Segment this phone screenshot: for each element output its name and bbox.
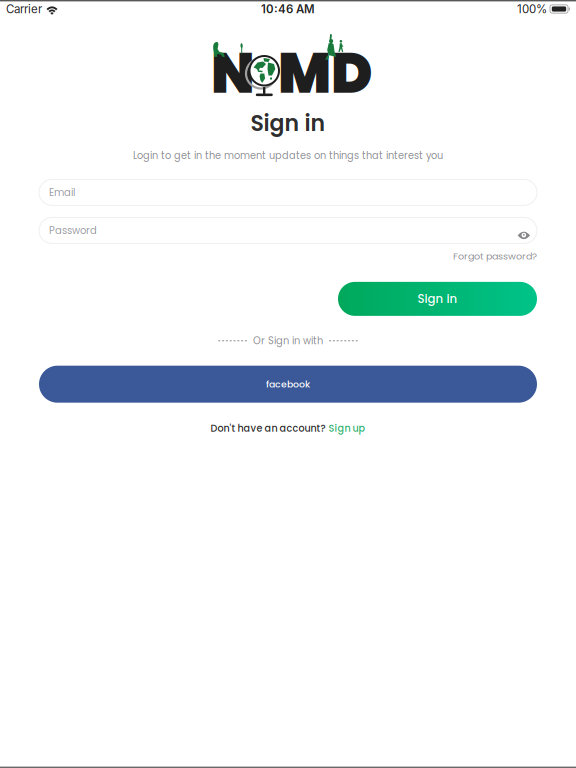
staticText: 100% xyxy=(517,2,547,16)
staticText: Login to get in the moment updates on th… xyxy=(133,149,443,162)
staticText: Or Sign in with xyxy=(253,334,323,348)
staticText: Don't have an account? xyxy=(210,422,325,435)
button[interactable]: facebook xyxy=(39,366,537,403)
button[interactable]: Forgot password? xyxy=(445,246,537,266)
staticText: N xyxy=(211,34,255,112)
staticText: 10:46 AM xyxy=(261,2,315,16)
button[interactable]: Sign up xyxy=(328,422,365,435)
staticText: Email xyxy=(49,185,75,199)
staticText: MD xyxy=(278,34,373,112)
button[interactable]: Sign in xyxy=(338,282,537,316)
staticText: Password xyxy=(49,223,97,237)
staticText: Carrier xyxy=(6,2,42,16)
staticText: Sign in xyxy=(417,291,457,307)
staticText: Sign up xyxy=(328,422,365,435)
staticText: facebook xyxy=(266,378,310,391)
staticText: Sign in xyxy=(250,108,325,139)
staticText: Forgot password? xyxy=(453,249,537,263)
